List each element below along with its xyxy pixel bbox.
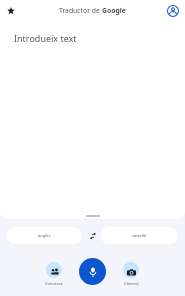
staticText: Google [102,6,126,15]
staticText: Càmera [124,281,139,286]
button[interactable]: Càmera [117,262,145,286]
staticText: Introdueix text [14,32,77,44]
button[interactable]: castellà [101,227,178,244]
button[interactable]: Account [166,4,180,18]
button[interactable]: anglès [7,227,82,244]
staticText: Conversa [45,281,63,286]
staticText: anglès [38,233,51,238]
button[interactable]: Voice input [79,258,106,285]
staticText: Traductor de [59,6,102,15]
button[interactable]: Swap languages [85,228,100,243]
button[interactable]: Conversa [40,262,68,286]
button[interactable]: Saved translations [4,4,18,18]
staticText: castellà [132,233,147,238]
